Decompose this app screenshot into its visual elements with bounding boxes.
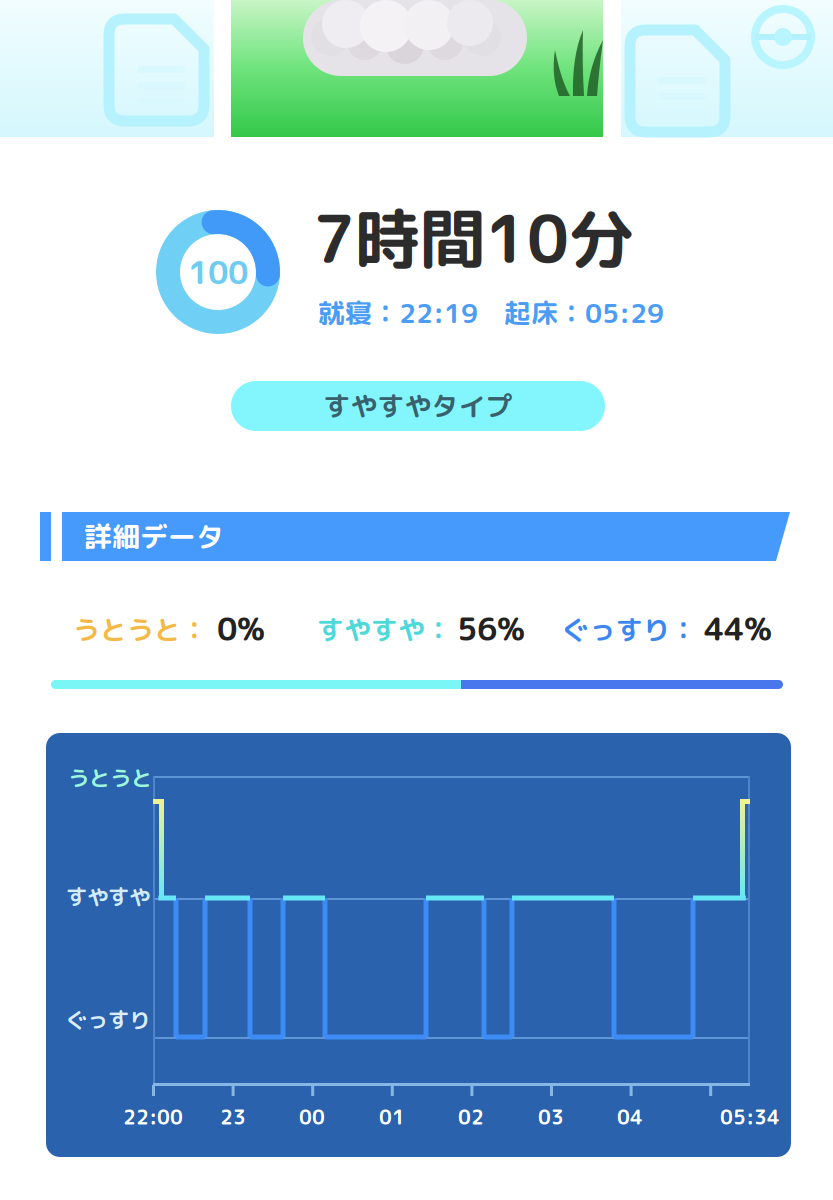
staticText: すやすやタイプ: [323, 387, 512, 425]
staticText: 0%: [217, 606, 265, 651]
staticText: 00: [299, 1103, 325, 1131]
staticText: 23: [220, 1103, 246, 1131]
staticText: 7時間10分: [313, 192, 634, 283]
staticText: 100: [188, 250, 248, 294]
staticText: 就寝：22:19: [318, 294, 478, 332]
staticText: 詳細データ: [84, 517, 224, 556]
staticText: 44%: [704, 606, 772, 651]
staticText: すやすや: [66, 882, 150, 912]
staticText: 03: [538, 1103, 564, 1131]
staticText: すやすや：: [317, 611, 452, 648]
staticText: ぐっすり：: [562, 611, 697, 648]
button[interactable]: すやすやタイプ: [231, 381, 605, 431]
staticText: うとうと：: [73, 611, 208, 648]
staticText: 02: [458, 1103, 484, 1131]
staticText: 56%: [457, 606, 525, 651]
staticText: ぐっすり: [66, 1005, 150, 1035]
staticText: 05:34: [720, 1103, 780, 1131]
staticText: 起床：05:29: [504, 294, 664, 332]
staticText: 04: [617, 1103, 643, 1131]
staticText: うとうと: [68, 763, 152, 793]
staticText: 01: [379, 1103, 405, 1131]
staticText: 22:00: [123, 1103, 183, 1131]
